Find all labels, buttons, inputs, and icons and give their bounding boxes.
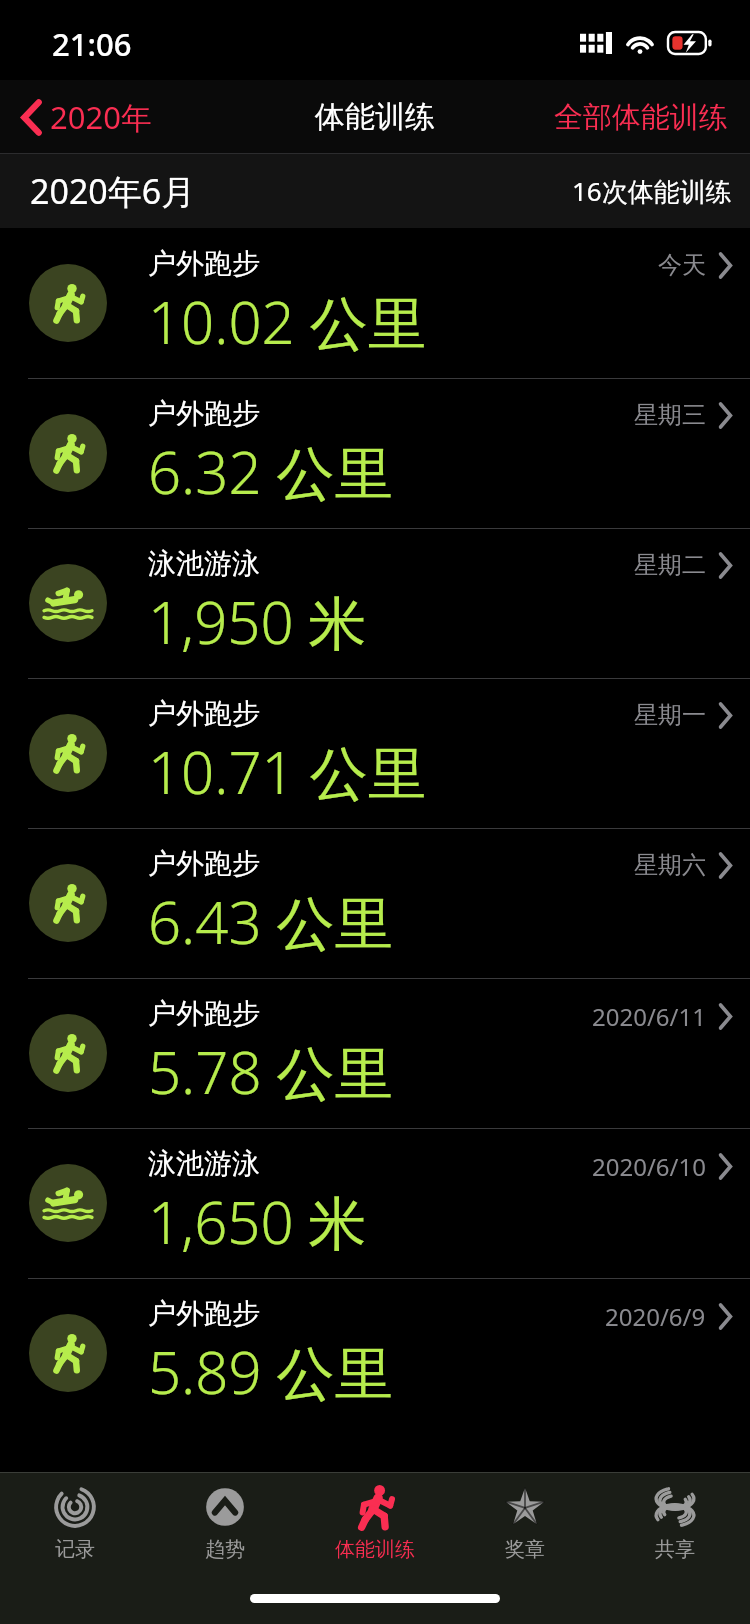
staticText: 奖章 (505, 1537, 545, 1562)
staticText: 星期二 (634, 550, 706, 580)
staticText: 体能训练 (315, 98, 435, 136)
staticText: 泳池游泳 (148, 546, 260, 581)
staticText: 5.89 公里 (148, 1332, 393, 1411)
staticText: 1,650 米 (148, 1182, 367, 1261)
staticText: 泳池游泳 (148, 1146, 260, 1181)
button[interactable]: 户外跑步 (0, 1278, 750, 1428)
staticText: 2020年 (50, 96, 152, 138)
staticText: 10.71 公里 (148, 732, 426, 811)
staticText: 趋势 (205, 1537, 245, 1562)
button[interactable]: 记录 (0, 1473, 150, 1573)
staticText: 星期一 (634, 700, 706, 730)
staticText: 记录 (55, 1537, 95, 1562)
button[interactable]: Back (0, 88, 164, 146)
staticText: 21:06 (52, 23, 132, 65)
button[interactable]: 泳池游泳 (0, 1128, 750, 1278)
staticText: 今天 (658, 250, 706, 280)
staticText: 10.02 公里 (148, 282, 426, 361)
staticText: 2020/6/11 (592, 1000, 706, 1033)
button[interactable]: 户外跑步 (0, 828, 750, 978)
staticText: 2020年6月 (30, 168, 196, 214)
button[interactable]: 体能训练 (300, 1473, 450, 1573)
staticText: 16次体能训练 (572, 173, 732, 209)
staticText: 户外跑步 (148, 396, 260, 431)
other: Back (22, 101, 41, 134)
button[interactable]: 奖章 (450, 1473, 600, 1573)
staticText: 6.32 公里 (148, 432, 393, 511)
button[interactable]: 全部体能训练 (532, 89, 750, 146)
button[interactable]: 户外跑步 (0, 378, 750, 528)
staticText: 户外跑步 (148, 246, 260, 281)
staticText: 共享 (655, 1537, 695, 1562)
staticText: 星期六 (634, 850, 706, 880)
staticText: 户外跑步 (148, 696, 260, 731)
staticText: 6.43 公里 (148, 882, 393, 961)
button[interactable]: 户外跑步 (0, 678, 750, 828)
staticText: 1,950 米 (148, 582, 367, 661)
staticText: 户外跑步 (148, 846, 260, 881)
button[interactable]: 共享 (600, 1473, 750, 1573)
staticText: 2020/6/9 (605, 1300, 706, 1333)
button[interactable]: 户外跑步 (0, 978, 750, 1128)
staticText: 2020/6/10 (592, 1150, 706, 1183)
staticText: 户外跑步 (148, 1296, 260, 1331)
staticText: 体能训练 (335, 1537, 415, 1562)
staticText: 5.78 公里 (148, 1032, 393, 1111)
staticText: 星期三 (634, 400, 706, 430)
button[interactable]: 趋势 (150, 1473, 300, 1573)
button[interactable]: 泳池游泳 (0, 528, 750, 678)
staticText: 户外跑步 (148, 996, 260, 1031)
button[interactable]: 户外跑步 (0, 228, 750, 378)
